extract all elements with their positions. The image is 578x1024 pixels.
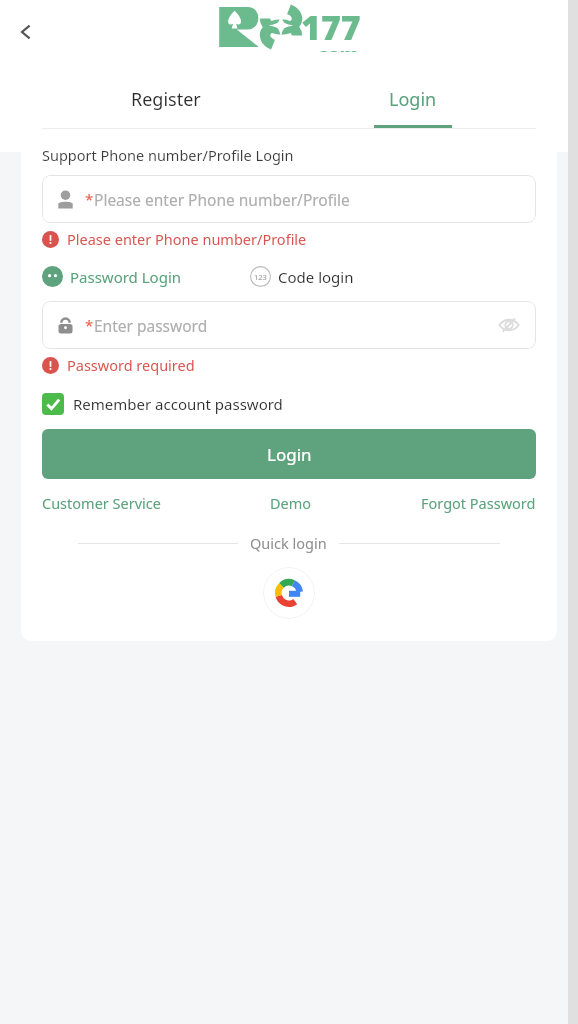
- staticText: Please enter Phone number/Profile: [67, 229, 307, 249]
- staticText: Login: [267, 443, 312, 466]
- staticText: 177: [301, 4, 361, 50]
- staticText: Support Phone number/Profile Login: [42, 145, 294, 165]
- button[interactable]: 123: [250, 266, 354, 287]
- button[interactable]: Customer Service: [42, 493, 161, 513]
- staticText: Customer Service: [42, 493, 161, 513]
- button[interactable]: Show password: [496, 312, 522, 338]
- button[interactable]: *: [42, 301, 536, 349]
- button[interactable]: Forgot Password: [421, 493, 536, 513]
- button[interactable]: Login: [42, 429, 536, 479]
- staticText: Password required: [67, 355, 195, 375]
- button[interactable]: Sign in with Google: [263, 567, 315, 619]
- button[interactable]: *: [42, 175, 536, 223]
- staticText: *: [85, 315, 94, 335]
- staticText: Enter password: [94, 315, 208, 336]
- staticText: Quick login: [250, 533, 327, 553]
- button[interactable]: Back: [4, 10, 48, 54]
- staticText: *: [85, 189, 94, 209]
- staticText: Remember account password: [73, 394, 283, 414]
- staticText: Please enter Phone number/Profile: [94, 189, 350, 210]
- staticText: 123: [254, 272, 267, 282]
- button[interactable]: Demo: [270, 493, 312, 513]
- button[interactable]: Login: [289, 70, 536, 128]
- button[interactable]: Register: [42, 70, 289, 128]
- staticText: Demo: [270, 493, 312, 513]
- staticText: Forgot Password: [421, 493, 536, 513]
- staticText: Password Login: [70, 267, 182, 287]
- staticText: Register: [131, 87, 201, 112]
- staticText: Login: [389, 87, 437, 112]
- button[interactable]: Password Login: [42, 266, 182, 287]
- staticText: .com: [312, 42, 359, 52]
- button[interactable]: Remember account password: [42, 393, 283, 415]
- staticText: Code login: [278, 267, 354, 287]
